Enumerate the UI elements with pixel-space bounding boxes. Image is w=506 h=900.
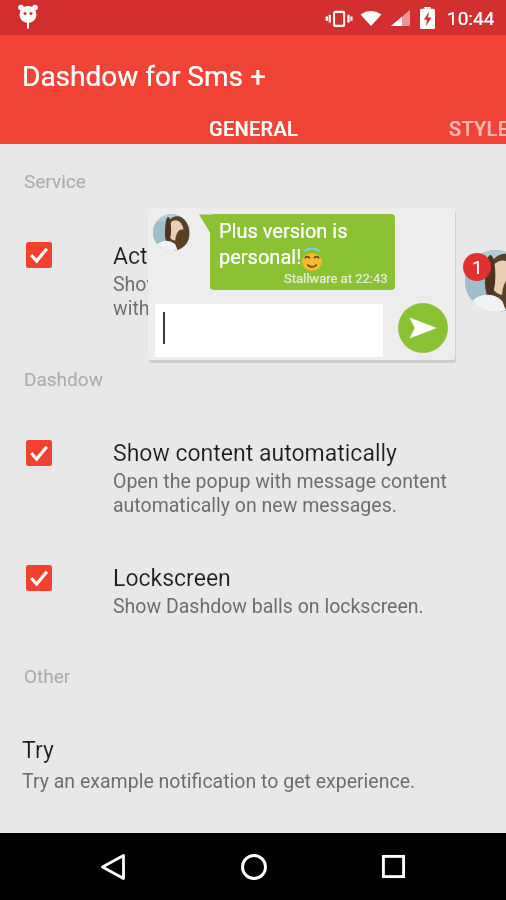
staticText: Active bbox=[113, 243, 177, 270]
staticText: 1 bbox=[472, 256, 483, 278]
staticText: Show a popup with new messages with a po… bbox=[113, 273, 413, 319]
button[interactable]: Show content automatically bbox=[0, 424, 506, 532]
staticText: Dashdow for Sms + bbox=[22, 60, 266, 93]
button[interactable]: Send bbox=[398, 303, 448, 353]
staticText: Dashdow bbox=[24, 368, 103, 390]
staticText: Try bbox=[22, 737, 54, 764]
staticText: Open the popup with message content auto… bbox=[113, 470, 447, 516]
button[interactable]: Contact bbox=[465, 250, 506, 312]
staticText: Lockscreen bbox=[113, 565, 231, 592]
button[interactable] bbox=[155, 304, 383, 357]
staticText: STYLE bbox=[449, 117, 506, 140]
staticText: Service bbox=[24, 170, 86, 192]
button[interactable]: Active bbox=[0, 226, 506, 334]
button[interactable]: Lockscreen bbox=[0, 549, 506, 657]
staticText: GENERAL bbox=[209, 117, 299, 140]
button[interactable]: Recent apps bbox=[340, 833, 447, 900]
staticText: Plus version is personal! bbox=[219, 219, 348, 269]
button[interactable]: GENERAL bbox=[150, 100, 357, 144]
staticText: Show content automatically bbox=[113, 440, 397, 467]
button[interactable]: STYLE bbox=[376, 100, 506, 144]
button[interactable]: Home bbox=[200, 833, 307, 900]
staticText: Try an example notification to get exper… bbox=[22, 770, 416, 793]
staticText: Show Dashdow balls on lockscreen. bbox=[113, 595, 424, 618]
button[interactable]: Try bbox=[0, 737, 506, 807]
staticText: Stallware at 22:43 bbox=[284, 271, 388, 286]
staticText: Other bbox=[24, 665, 71, 687]
staticText: 10:44 bbox=[447, 7, 495, 29]
button[interactable]: Back bbox=[59, 833, 166, 900]
